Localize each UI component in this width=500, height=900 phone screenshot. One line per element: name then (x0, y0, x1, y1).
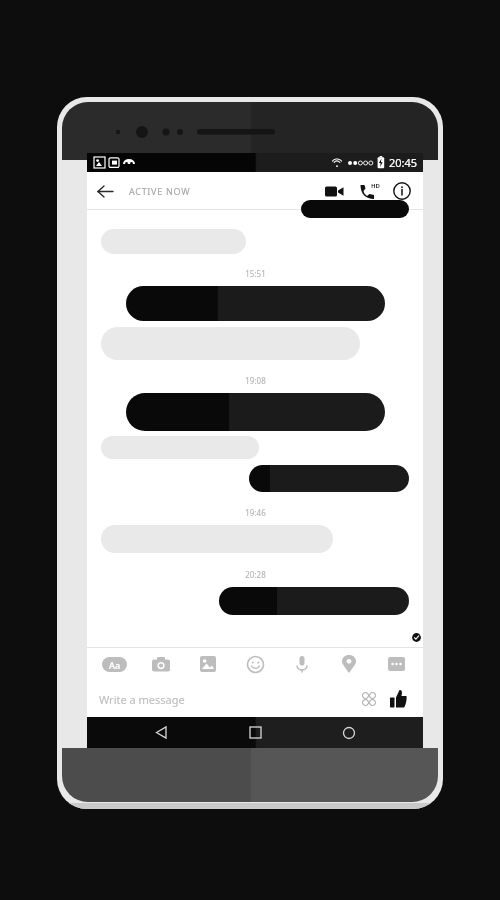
staticText: 20:45 (389, 155, 418, 170)
staticText: ACTIVE NOW (129, 185, 191, 197)
button[interactable]: Video call (317, 174, 351, 208)
button[interactable] (126, 393, 385, 431)
button[interactable]: Home (329, 717, 369, 748)
button[interactable]: Conversation info (385, 174, 419, 208)
button[interactable]: Back (141, 717, 181, 748)
button[interactable]: More options (379, 649, 413, 679)
button[interactable] (126, 286, 385, 321)
button[interactable]: Voice call HD (351, 174, 385, 208)
button[interactable]: Stickers (355, 685, 383, 713)
button[interactable] (249, 465, 409, 492)
staticText: 20:28 (245, 569, 266, 580)
staticText: 19:08 (245, 375, 266, 386)
button[interactable] (101, 525, 333, 553)
button[interactable] (101, 229, 246, 254)
button[interactable] (101, 327, 360, 360)
staticText: 15:51 (245, 268, 266, 279)
staticText: Write a message (99, 692, 185, 707)
button[interactable]: Camera (144, 649, 178, 679)
button[interactable]: Emoji (238, 649, 272, 679)
button[interactable]: Write a message (99, 681, 355, 717)
button[interactable] (219, 587, 409, 615)
button[interactable]: Location (332, 649, 366, 679)
staticText: 19:46 (245, 507, 266, 518)
button[interactable]: Voice message (285, 649, 319, 679)
staticText: Aa (109, 659, 121, 671)
button[interactable]: Gallery (191, 649, 225, 679)
button[interactable]: Back (87, 173, 123, 209)
button[interactable]: Recent apps (235, 717, 275, 748)
button[interactable] (101, 436, 259, 459)
button[interactable]: Text formatting (97, 649, 131, 679)
staticText: HD (371, 182, 380, 190)
button[interactable]: Send like (383, 684, 413, 714)
